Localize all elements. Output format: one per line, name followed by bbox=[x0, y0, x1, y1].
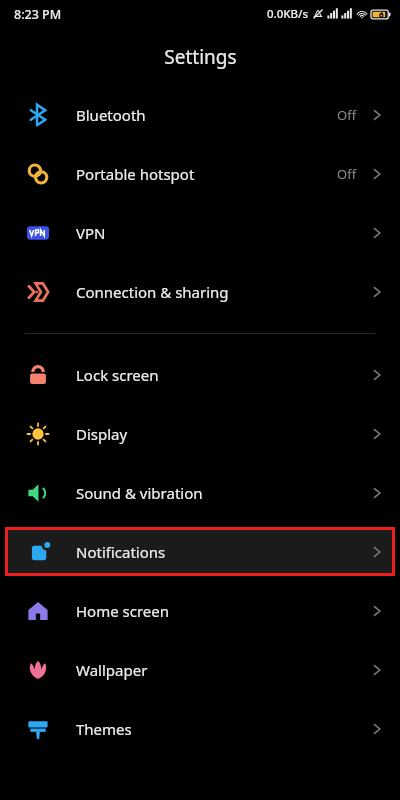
button[interactable]: Connection & sharing bbox=[0, 262, 400, 321]
staticText: Off bbox=[337, 106, 357, 124]
button[interactable]: Home screen bbox=[0, 581, 400, 640]
staticText: 8:23 PM bbox=[14, 6, 62, 23]
staticText: Bluetooth bbox=[76, 105, 146, 125]
button[interactable]: Notifications bbox=[5, 527, 395, 576]
staticText: Themes bbox=[76, 719, 132, 739]
staticText: Sound & vibration bbox=[76, 483, 203, 503]
button[interactable]: Lock screen bbox=[0, 345, 400, 404]
staticText: 0.0KB/s bbox=[267, 6, 309, 22]
button[interactable]: Sound & vibration bbox=[0, 463, 400, 522]
staticText: Display bbox=[76, 424, 128, 444]
staticText: Connection & sharing bbox=[76, 282, 229, 302]
button[interactable]: Themes bbox=[0, 699, 400, 758]
staticText: Off bbox=[337, 165, 357, 183]
button[interactable]: Wallpaper bbox=[0, 640, 400, 699]
button[interactable]: Display bbox=[0, 404, 400, 463]
staticText: Portable hotspot bbox=[76, 164, 195, 184]
staticText: Wallpaper bbox=[76, 660, 148, 680]
button[interactable]: Portable hotspot bbox=[0, 144, 400, 203]
staticText: Settings bbox=[164, 44, 237, 70]
staticText: Home screen bbox=[76, 601, 170, 621]
staticText: Notifications bbox=[76, 542, 166, 562]
button[interactable]: Bluetooth bbox=[0, 85, 400, 144]
staticText: Lock screen bbox=[76, 365, 159, 385]
staticText: VPN bbox=[76, 223, 106, 243]
button[interactable]: VPN bbox=[0, 203, 400, 262]
